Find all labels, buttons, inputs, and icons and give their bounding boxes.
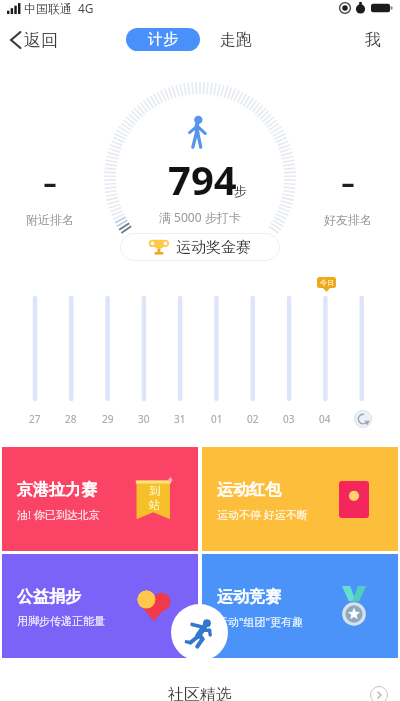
staticText: 好友排名 [324,212,372,227]
staticText: 03 [283,412,295,426]
button[interactable]: 公益捐步 [2,554,198,658]
staticText: 运动"组团"更有趣 [217,614,303,629]
staticText: 计步 [148,30,178,49]
button[interactable]: Start running [171,604,228,661]
staticText: 31 [174,412,186,426]
button[interactable]: 运动红包 [202,447,398,551]
staticText: 返回 [24,30,58,51]
staticText: 运动竞赛 [217,587,281,607]
staticText: 02 [247,412,259,426]
staticText: 社区精选 [168,685,232,701]
button[interactable]: Sync steps [354,410,372,428]
button[interactable]: 计步 [126,28,200,51]
staticText: 步 [234,183,247,199]
staticText: 4G [78,0,94,16]
staticText: 01 [211,412,223,426]
staticText: 到 [149,484,160,498]
staticText: 27 [29,412,41,426]
staticText: 公益捐步 [17,587,81,607]
staticText: 用脚步传递正能量 [17,614,105,628]
button[interactable]: 走跑 [214,27,258,53]
button[interactable]: 京港拉力赛 [2,447,198,551]
staticText: 京港拉力赛 [17,480,97,500]
staticText: 运动红包 [217,480,281,500]
staticText: 29 [102,412,114,426]
staticText: 运动不停 好运不断 [217,507,308,522]
staticText: 附近排名 [26,212,74,227]
button[interactable]: 运动竞赛 [202,554,398,658]
staticText: 站 [149,498,160,512]
staticText: 今日 [320,278,334,287]
staticText: 794 [168,152,237,206]
button[interactable]: 好友排名 [312,168,384,244]
staticText: 我 [365,30,381,50]
staticText: 油! 你已到达北京 [17,507,100,522]
staticText: 28 [65,412,77,426]
staticText: 运动奖金赛 [176,238,251,257]
staticText: 中国联通 [24,1,72,16]
staticText: 满 5000 步打卡 [159,209,241,225]
staticText: 走跑 [220,30,252,50]
button[interactable]: More community [370,686,388,701]
button[interactable]: 我 [358,27,388,53]
staticText: 30 [138,412,150,426]
button[interactable]: 返回 [9,27,61,53]
button[interactable]: 运动奖金赛 [120,233,280,261]
staticText: 04 [319,412,331,426]
button[interactable]: 附近排名 [14,168,86,244]
